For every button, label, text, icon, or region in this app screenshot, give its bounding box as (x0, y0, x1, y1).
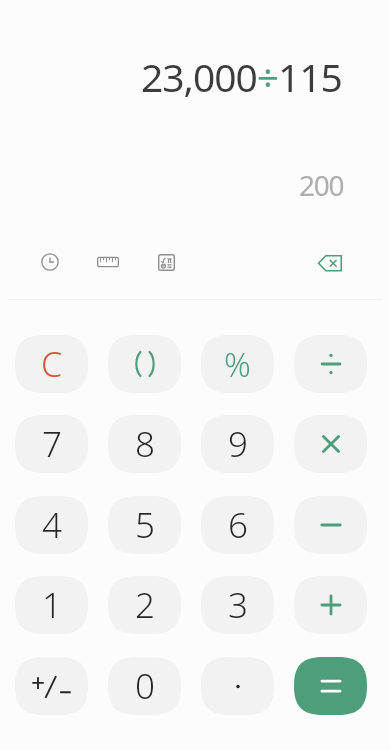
button[interactable]: 9 (201, 415, 274, 473)
button[interactable]: +/– (15, 657, 88, 715)
button[interactable]: 8 (108, 415, 181, 473)
button[interactable]: 3 (201, 576, 274, 634)
button[interactable]: Minus (294, 496, 367, 554)
button[interactable]: 0 (108, 657, 181, 715)
button[interactable]: Decimal point (201, 657, 274, 715)
staticText: % (224, 342, 251, 387)
staticText: 7 (42, 420, 62, 468)
staticText: 23,000÷115 (141, 50, 342, 103)
button[interactable]: Plus (294, 576, 367, 634)
button[interactable]: Unit converter (86, 240, 130, 284)
button[interactable]: History (28, 240, 72, 284)
staticText: 4 (42, 501, 62, 549)
staticText: 3 (228, 581, 248, 629)
button[interactable]: 6 (201, 496, 274, 554)
button[interactable]: 5 (108, 496, 181, 554)
button[interactable]: Divide (294, 335, 367, 393)
button[interactable]: Clear (15, 335, 88, 393)
button[interactable]: 7 (15, 415, 88, 473)
staticText: 6 (228, 501, 248, 549)
staticText: 8 (135, 420, 155, 468)
button[interactable]: Parentheses (108, 335, 181, 393)
button[interactable]: 4 (15, 496, 88, 554)
staticText: 200 (299, 166, 344, 204)
button[interactable]: 1 (15, 576, 88, 634)
button[interactable]: Percent (201, 335, 274, 393)
button[interactable]: 2 (108, 576, 181, 634)
staticText: C (41, 341, 62, 387)
button[interactable]: Scientific calculator (144, 240, 188, 284)
staticText: 2 (135, 581, 155, 629)
staticText: 9 (228, 420, 248, 468)
button[interactable]: Backspace (308, 240, 352, 284)
staticText: 5 (135, 501, 155, 549)
button[interactable]: Multiply (294, 415, 367, 473)
button[interactable]: Equals (294, 657, 367, 715)
staticText: 1 (42, 581, 62, 629)
staticText: 0 (135, 662, 155, 710)
